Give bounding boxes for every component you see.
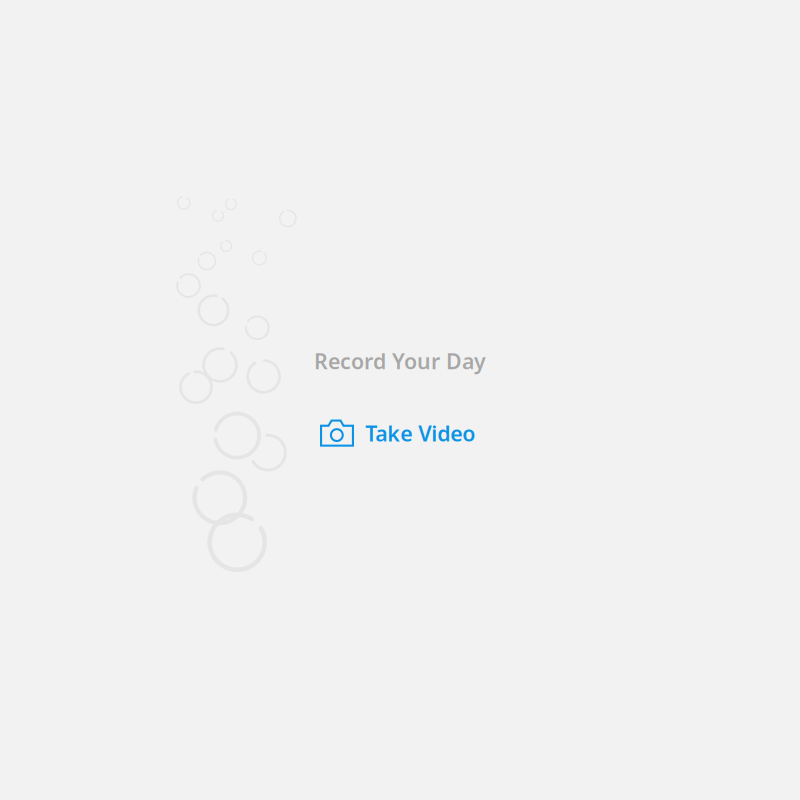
staticText: Record Your Day bbox=[314, 347, 486, 375]
button[interactable]: Take Video bbox=[320, 419, 474, 447]
staticText: Take Video bbox=[365, 419, 475, 447]
